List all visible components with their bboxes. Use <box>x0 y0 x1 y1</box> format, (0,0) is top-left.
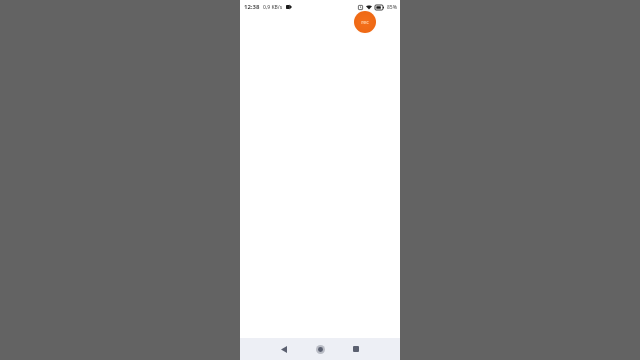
button[interactable]: Home <box>310 338 330 360</box>
staticText: rec <box>361 19 369 26</box>
button[interactable]: Back <box>274 338 294 360</box>
button[interactable]: Recent apps <box>346 338 366 360</box>
staticText: 85% <box>387 4 397 11</box>
staticText: 0,9 KB/s <box>263 4 283 11</box>
staticText: 12:38 <box>244 3 260 11</box>
button[interactable]: Record action <box>354 11 376 33</box>
